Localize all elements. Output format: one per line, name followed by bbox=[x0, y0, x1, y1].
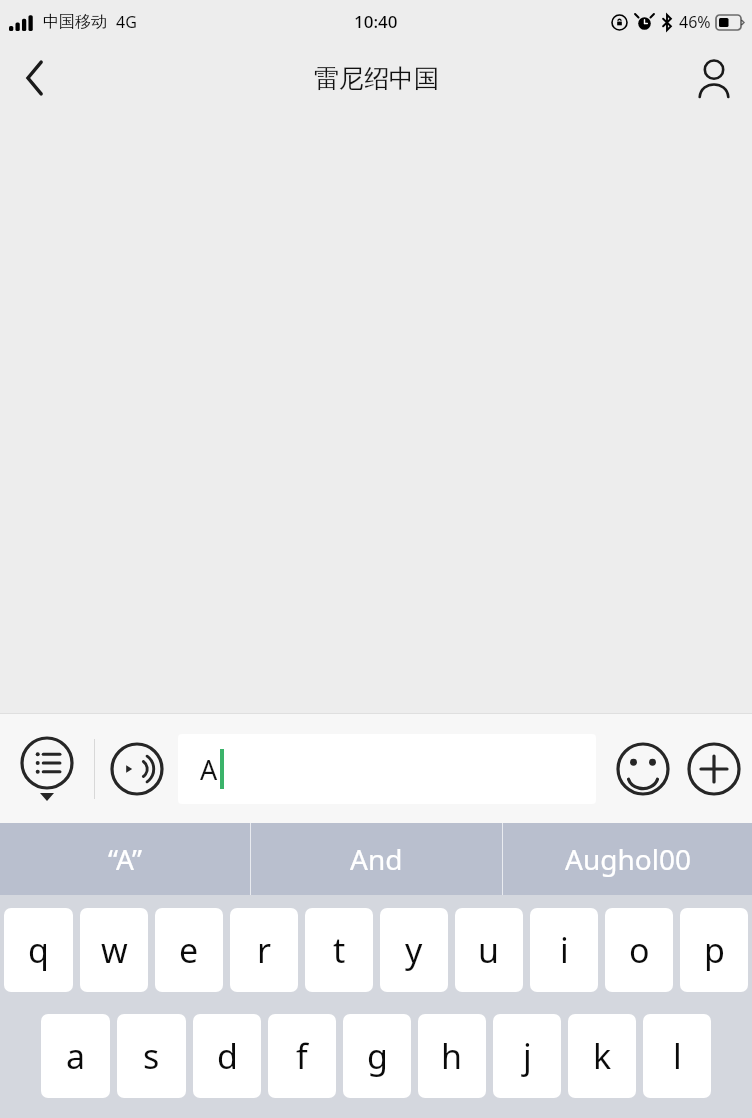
staticText: e bbox=[179, 927, 199, 973]
button[interactable]: More actions bbox=[676, 714, 752, 823]
button[interactable]: y bbox=[380, 908, 448, 992]
button[interactable]: And bbox=[251, 823, 502, 895]
staticText: l bbox=[673, 1033, 682, 1079]
button[interactable]: a bbox=[41, 1014, 110, 1098]
staticText: Aughol00 bbox=[565, 840, 691, 878]
staticText: q bbox=[28, 927, 49, 973]
staticText: 46% bbox=[679, 11, 711, 33]
staticText: a bbox=[66, 1033, 86, 1079]
staticText: And bbox=[350, 840, 403, 878]
button[interactable]: u bbox=[455, 908, 523, 992]
staticText: h bbox=[441, 1033, 463, 1079]
button[interactable]: Emoji bbox=[610, 714, 676, 823]
staticText: 10:40 bbox=[354, 10, 398, 33]
staticText: A bbox=[200, 751, 218, 788]
button[interactable]: f bbox=[268, 1014, 336, 1098]
staticText: p bbox=[704, 927, 725, 973]
button[interactable]: p bbox=[680, 908, 748, 992]
button[interactable]: d bbox=[193, 1014, 261, 1098]
button[interactable]: Back bbox=[0, 43, 70, 113]
staticText: k bbox=[593, 1033, 612, 1079]
button[interactable]: A bbox=[178, 734, 596, 804]
staticText: g bbox=[367, 1033, 388, 1079]
staticText: 4G bbox=[116, 11, 137, 33]
button[interactable]: e bbox=[155, 908, 223, 992]
staticText: u bbox=[478, 927, 500, 973]
button[interactable]: Contact profile bbox=[676, 43, 752, 113]
button[interactable]: w bbox=[80, 908, 148, 992]
button[interactable]: Aughol00 bbox=[503, 823, 752, 895]
button[interactable]: Voice input bbox=[95, 714, 178, 823]
button[interactable]: h bbox=[418, 1014, 486, 1098]
staticText: d bbox=[217, 1033, 238, 1079]
staticText: i bbox=[560, 927, 569, 973]
button[interactable]: l bbox=[643, 1014, 711, 1098]
button[interactable]: More input modes bbox=[0, 714, 94, 823]
staticText: j bbox=[523, 1033, 532, 1079]
staticText: w bbox=[101, 927, 128, 973]
staticText: “A” bbox=[108, 840, 143, 878]
button[interactable]: s bbox=[117, 1014, 186, 1098]
staticText: f bbox=[296, 1033, 308, 1079]
staticText: o bbox=[629, 927, 650, 973]
staticText: t bbox=[333, 927, 346, 973]
button[interactable]: r bbox=[230, 908, 298, 992]
staticText: y bbox=[405, 927, 423, 973]
button[interactable]: g bbox=[343, 1014, 411, 1098]
staticText: s bbox=[143, 1033, 160, 1079]
button[interactable]: i bbox=[530, 908, 598, 992]
button[interactable]: “A” bbox=[0, 823, 250, 895]
button[interactable]: t bbox=[305, 908, 373, 992]
staticText: 中国移动 bbox=[43, 12, 107, 32]
button[interactable]: o bbox=[605, 908, 673, 992]
button[interactable]: q bbox=[4, 908, 73, 992]
button[interactable]: k bbox=[568, 1014, 636, 1098]
staticText: 雷尼绍中国 bbox=[314, 63, 439, 94]
button[interactable]: j bbox=[493, 1014, 561, 1098]
staticText: r bbox=[257, 927, 272, 973]
